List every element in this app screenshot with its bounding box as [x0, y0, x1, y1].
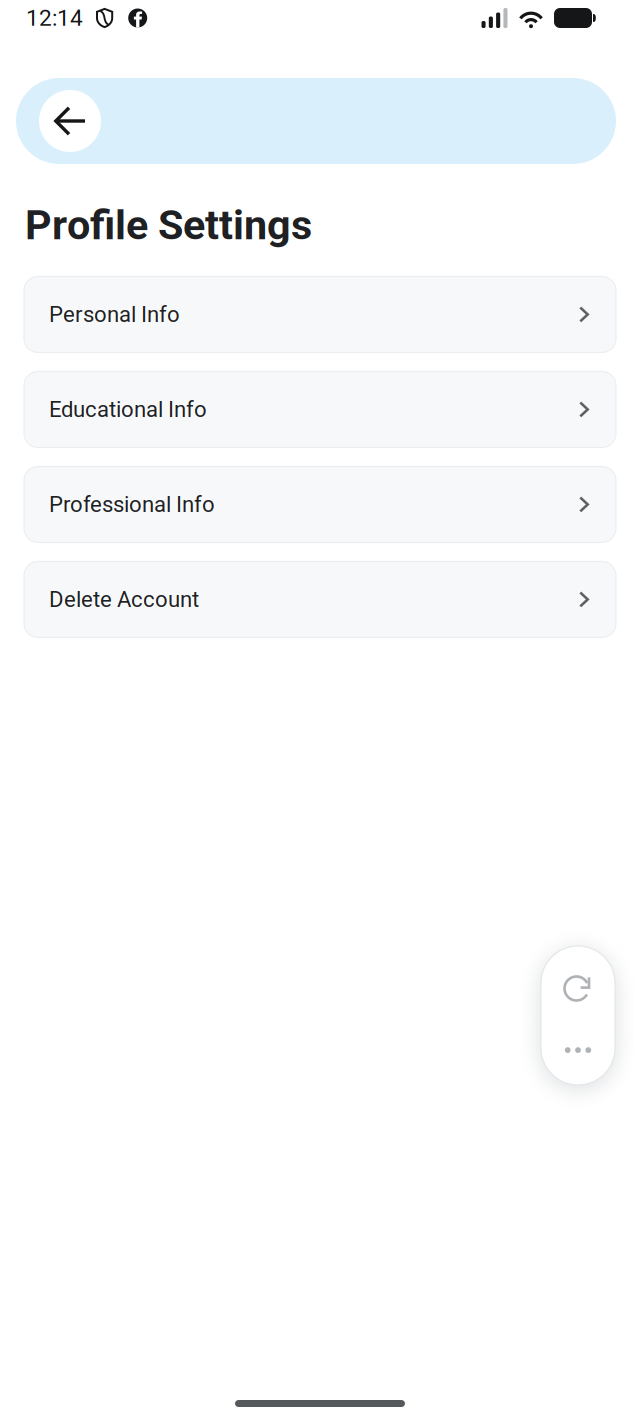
- staticText: Educational Info: [49, 396, 207, 422]
- staticText: Professional Info: [49, 491, 215, 517]
- button[interactable]: Reload page and more options: [541, 946, 615, 1085]
- button[interactable]: Educational Info: [24, 371, 616, 447]
- button[interactable]: Professional Info: [24, 466, 616, 542]
- button[interactable]: Delete Account: [24, 561, 616, 637]
- staticText: Delete Account: [49, 586, 199, 612]
- staticText: 12:14: [26, 5, 83, 31]
- button[interactable]: Personal Info: [24, 276, 616, 352]
- staticText: Profile Settings: [25, 201, 312, 249]
- button[interactable]: Back: [16, 78, 616, 164]
- staticText: Personal Info: [49, 301, 180, 327]
